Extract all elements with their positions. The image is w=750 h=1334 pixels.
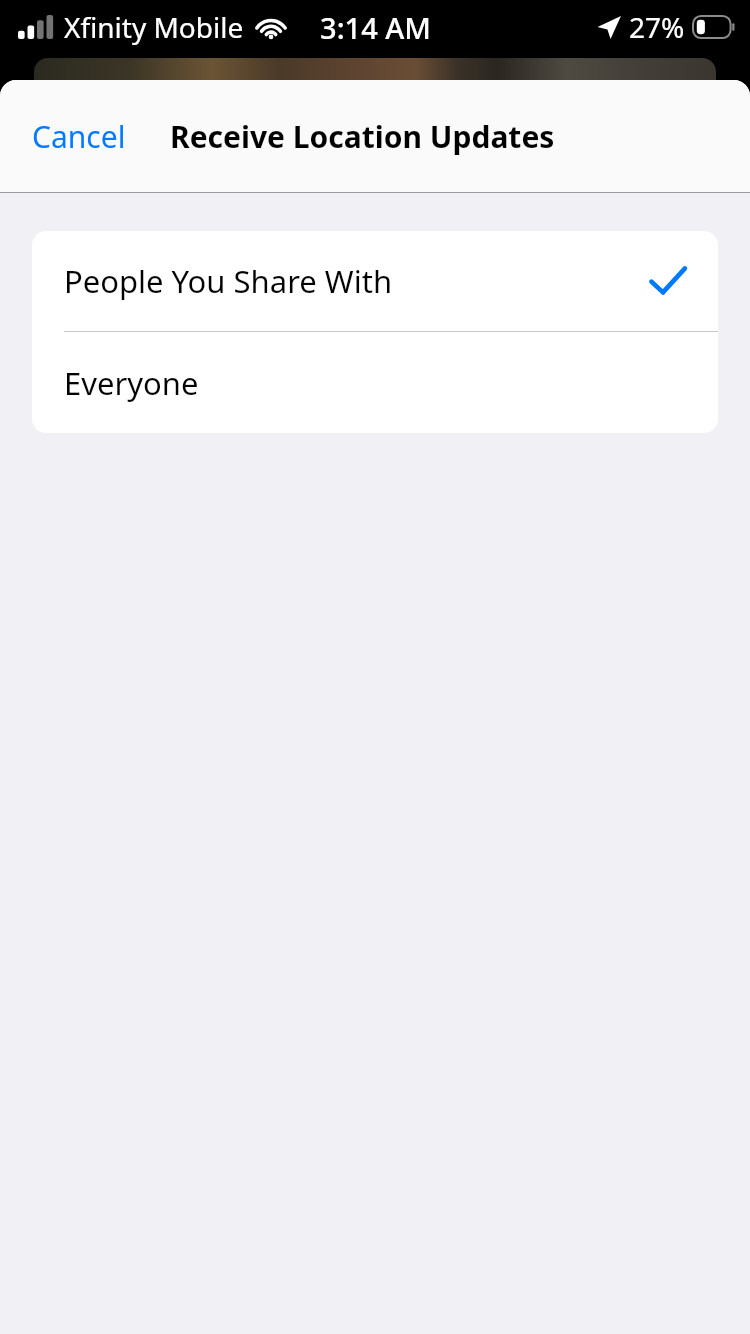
button[interactable]: Cancel: [16, 106, 142, 167]
staticText: 27%: [629, 8, 685, 46]
other: Selected: [650, 266, 686, 296]
staticText: Cancel: [32, 116, 126, 157]
staticText: Everyone: [64, 362, 199, 404]
button[interactable]: People You Share With: [32, 231, 718, 331]
staticText: Receive Location Updates: [170, 116, 555, 157]
staticText: 3:14 AM: [320, 8, 431, 47]
staticText: People You Share With: [64, 260, 393, 302]
button[interactable]: Everyone: [32, 332, 718, 433]
staticText: Xfinity Mobile: [64, 8, 244, 46]
